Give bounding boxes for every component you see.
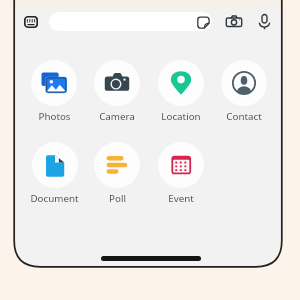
button[interactable]: Camera: [223, 11, 245, 33]
staticText: Poll: [109, 192, 126, 205]
staticText: Photos: [38, 110, 71, 123]
button[interactable]: Photos: [23, 60, 85, 123]
button[interactable]: Document: [23, 142, 85, 205]
button[interactable]: Stickers: [49, 12, 212, 31]
staticText: Camera: [99, 110, 135, 123]
button[interactable]: Voice message: [253, 10, 275, 32]
staticText: Document: [30, 192, 79, 205]
button[interactable]: Keyboard: [20, 11, 42, 33]
staticText: Location: [161, 110, 201, 123]
staticText: Event: [168, 192, 194, 205]
button[interactable]: Event: [150, 142, 212, 205]
button[interactable]: Contact: [213, 60, 275, 123]
staticText: Contact: [226, 110, 262, 123]
button[interactable]: Location: [150, 60, 212, 123]
button[interactable]: Poll: [86, 142, 148, 205]
button[interactable]: Camera: [86, 60, 148, 123]
other: Stickers: [196, 15, 210, 29]
